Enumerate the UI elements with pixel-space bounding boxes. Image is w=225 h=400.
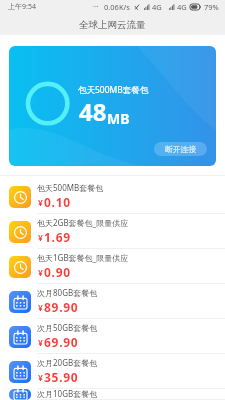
- staticText: 4G: [152, 2, 162, 12]
- button[interactable]: 次月80GB套餐包: [0, 284, 225, 319]
- staticText: 次月50GB套餐包: [37, 322, 98, 333]
- staticText: 包天500MB套餐包: [78, 84, 149, 96]
- staticText: 上午9:54: [8, 2, 36, 12]
- staticText: MB: [107, 109, 130, 128]
- staticText: 35.90: [44, 369, 79, 385]
- staticText: 4G: [177, 2, 187, 12]
- staticText: ¥: [38, 232, 43, 244]
- staticText: ¥: [38, 337, 43, 349]
- staticText: ¥: [38, 267, 43, 279]
- staticText: 包天500MB套餐包: [37, 182, 104, 193]
- staticText: ¥: [38, 372, 43, 384]
- staticText: 69.90: [44, 334, 79, 350]
- staticText: 次月80GB套餐包: [37, 287, 98, 298]
- staticText: 断开连接: [165, 144, 197, 154]
- staticText: 包天1GB套餐包_限量供应: [37, 252, 129, 263]
- staticText: 次月20GB套餐包: [37, 357, 98, 368]
- staticText: ¥: [38, 197, 43, 209]
- button[interactable]: 包天500MB套餐包: [0, 179, 225, 214]
- staticText: 1.69: [44, 229, 71, 245]
- button[interactable]: 次月50GB套餐包: [0, 319, 225, 354]
- staticText: 89.90: [44, 299, 79, 315]
- staticText: 包天2GB套餐包_限量供应: [37, 217, 129, 228]
- staticText: 0.06K/s: [104, 2, 130, 12]
- staticText: ···: [93, 2, 99, 12]
- staticText: 48: [79, 95, 107, 128]
- button[interactable]: 包天1GB套餐包_限量供应: [0, 249, 225, 284]
- button[interactable]: 包天2GB套餐包_限量供应: [0, 214, 225, 249]
- staticText: ¥: [38, 302, 43, 314]
- button[interactable]: 次月10GB套餐包: [0, 389, 225, 400]
- staticText: 79%: [204, 2, 219, 12]
- button[interactable]: 次月20GB套餐包: [0, 354, 225, 389]
- staticText: 0.10: [44, 194, 71, 210]
- button[interactable]: 断开连接: [154, 142, 207, 156]
- staticText: 0.90: [44, 264, 71, 280]
- staticText: 全球上网云流量: [79, 19, 146, 31]
- staticText: 次月10GB套餐包: [37, 388, 98, 399]
